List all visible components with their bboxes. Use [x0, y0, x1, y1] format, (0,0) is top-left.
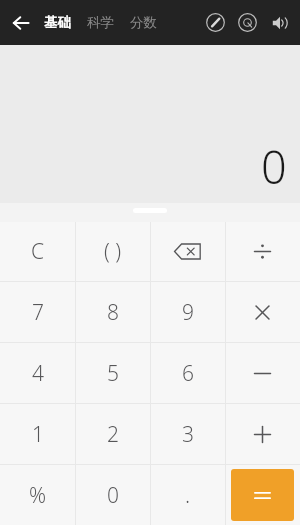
button[interactable]: Equals	[231, 469, 294, 521]
button[interactable]: 基础	[42, 7, 73, 38]
button[interactable]: 1	[0, 404, 75, 464]
staticText: C	[31, 237, 45, 266]
staticText: 4	[32, 359, 44, 388]
staticText: 1	[32, 420, 44, 449]
button[interactable]: 科学	[85, 7, 116, 38]
button[interactable]: 3	[150, 404, 225, 464]
button[interactable]: C	[0, 222, 75, 281]
staticText: 3	[182, 420, 194, 449]
button[interactable]: 4	[0, 343, 75, 403]
button[interactable]: Minus	[225, 343, 300, 403]
staticText: 科学	[87, 14, 114, 31]
staticText: 9	[182, 298, 194, 327]
button[interactable]: 5	[75, 343, 150, 403]
button[interactable]: 分数	[128, 7, 159, 38]
button[interactable]: 7	[0, 282, 75, 342]
button[interactable]: 2	[75, 404, 150, 464]
staticText: ( )	[104, 237, 122, 266]
button[interactable]: Backspace	[150, 222, 225, 281]
button[interactable]: Plus	[225, 404, 300, 464]
button[interactable]: 9	[150, 282, 225, 342]
staticText: 2	[107, 420, 119, 449]
staticText: 6	[182, 359, 194, 388]
button[interactable]: .	[150, 465, 225, 525]
staticText: 5	[107, 359, 119, 388]
button[interactable]: Help	[234, 9, 261, 36]
button[interactable]: Multiply	[225, 282, 300, 342]
staticText: .	[185, 481, 191, 510]
button[interactable]: ( )	[75, 222, 150, 281]
button[interactable]: Sound	[266, 9, 293, 36]
button[interactable]: 6	[150, 343, 225, 403]
button[interactable]: 0	[75, 465, 150, 525]
staticText: 分数	[130, 14, 157, 31]
staticText: 基础	[44, 14, 71, 31]
staticText: 0	[107, 481, 119, 510]
button[interactable]: Divide	[225, 222, 300, 281]
staticText: %	[29, 481, 47, 510]
button[interactable]: Back	[4, 6, 38, 40]
staticText: 7	[32, 298, 44, 327]
button[interactable]: 8	[75, 282, 150, 342]
button[interactable]: %	[0, 465, 75, 525]
staticText: 8	[107, 298, 119, 327]
staticText: 0	[261, 136, 287, 197]
button[interactable]: Edit	[202, 9, 229, 36]
